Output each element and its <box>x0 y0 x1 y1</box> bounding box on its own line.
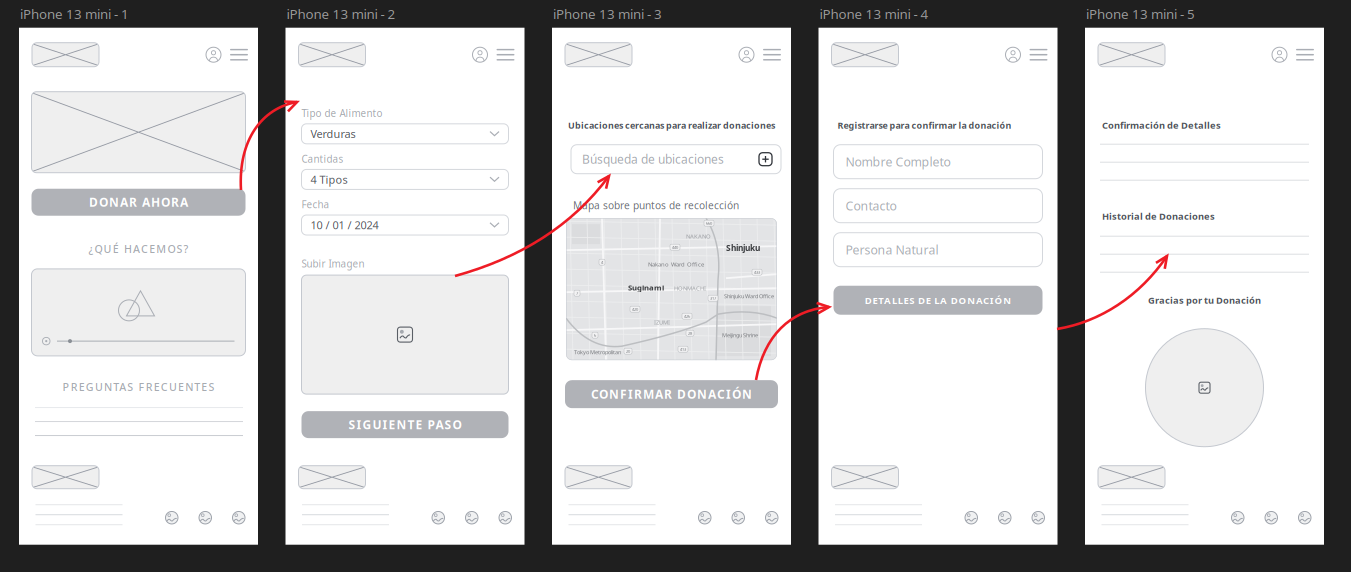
staticText: DONAR AHORA <box>89 194 188 210</box>
staticText: Cantidas <box>301 152 343 165</box>
staticText: Mapa sobre puntos de recolección <box>573 199 739 212</box>
button[interactable]: Perfil <box>472 47 487 62</box>
button[interactable]: CONFIRMAR DONACIÓN <box>565 380 778 408</box>
staticText: Verduras <box>310 126 355 141</box>
button[interactable]: Inicio <box>1098 43 1165 67</box>
staticText: 440 <box>672 244 678 250</box>
staticText: Registrarse para confirmar la donación <box>837 119 1011 131</box>
button[interactable]: 10 / 01 / 2024 <box>301 215 508 235</box>
staticText: 426 <box>684 313 690 319</box>
staticText: Tokyo Metropolitan <box>574 348 621 356</box>
button[interactable]: Perfil <box>1272 47 1287 62</box>
button[interactable]: Facebook <box>1231 511 1244 524</box>
button[interactable]: Twitter <box>1032 511 1044 524</box>
staticText: 28 <box>688 330 692 336</box>
staticText: 7 <box>576 290 578 296</box>
staticText: iPhone 13 mini - 1 <box>20 5 129 23</box>
staticText: Historial de Donaciones <box>1102 210 1215 222</box>
staticText: Shinjuku <box>726 242 760 253</box>
button[interactable]: Twitter <box>499 511 511 524</box>
button[interactable]: Twitter <box>765 511 778 524</box>
button[interactable]: SIGUIENTE PASO <box>301 411 508 438</box>
staticText: CONFIRMAR DONACIÓN <box>591 386 752 402</box>
staticText: 413 <box>680 346 686 352</box>
staticText: Persona Natural <box>845 242 938 258</box>
staticText: 10 / 01 / 2024 <box>310 218 378 232</box>
staticText: DETALLES DE LA DONACIÓN <box>865 294 1011 306</box>
button[interactable]: Inicio <box>831 43 898 67</box>
staticText: 20 <box>626 348 630 354</box>
button[interactable]: Inicio <box>298 43 365 67</box>
staticText: 4 <box>601 259 603 265</box>
button[interactable]: Nombre Completo <box>833 145 1042 179</box>
button[interactable]: Contacto <box>833 189 1042 223</box>
button[interactable]: Facebook <box>698 511 711 524</box>
staticText: HONMACHI <box>674 284 706 292</box>
button[interactable]: Perfil <box>1005 47 1020 62</box>
button[interactable]: DONAR AHORA <box>31 189 245 216</box>
button[interactable]: Instagram <box>998 511 1011 524</box>
button[interactable]: Perfil <box>206 47 221 62</box>
staticText: iPhone 13 mini - 5 <box>1086 5 1195 23</box>
button[interactable]: Menú <box>763 49 781 61</box>
staticText: Confirmación de Detalles <box>1102 119 1221 131</box>
staticText: Subir Imagen <box>301 257 364 270</box>
staticText: 6 <box>594 332 596 338</box>
button[interactable]: Twitter <box>1298 511 1311 524</box>
staticText: PREGUNTAS FRECUENTES <box>63 380 214 394</box>
staticText: 4 Tipos <box>310 172 347 187</box>
staticText: 317 <box>710 295 716 301</box>
staticText: Tipo de Alimento <box>301 107 382 120</box>
button[interactable]: Instagram <box>732 511 744 524</box>
button[interactable]: Perfil <box>739 47 754 62</box>
staticText: Shinjuku Ward Office <box>724 292 774 300</box>
button[interactable]: Persona Natural <box>833 233 1042 267</box>
staticText: 433 <box>754 269 760 275</box>
button[interactable]: Twitter <box>232 511 245 524</box>
staticText: Búsqueda de ubicaciones <box>582 151 724 167</box>
staticText: IZUMI <box>654 318 670 326</box>
staticText: iPhone 13 mini - 2 <box>286 5 395 23</box>
button[interactable]: Instagram <box>1265 511 1277 524</box>
button[interactable]: Verduras <box>301 124 508 144</box>
staticText: iPhone 13 mini - 3 <box>553 5 662 23</box>
button[interactable]: Instagram <box>199 511 211 524</box>
button[interactable]: Menú <box>230 49 248 61</box>
staticText: Gracias por tu Donación <box>1148 294 1261 306</box>
staticText: Contacto <box>845 198 896 214</box>
staticText: SIGUIENTE PASO <box>348 417 461 432</box>
button[interactable]: Menú <box>1029 49 1047 61</box>
button[interactable]: Inicio <box>565 43 632 67</box>
button[interactable]: Facebook <box>432 511 444 524</box>
button[interactable]: Instagram <box>465 511 478 524</box>
staticText: iPhone 13 mini - 4 <box>819 5 928 23</box>
staticText: Nakano Ward Office <box>648 260 704 268</box>
staticText: Ubicaciones cercanas para realizar donac… <box>568 119 775 131</box>
staticText: Suginami <box>628 282 664 293</box>
staticText: Meijingu Shrine <box>722 331 758 339</box>
button[interactable]: Menú <box>496 49 514 61</box>
staticText: Fecha <box>301 198 329 211</box>
staticText: 420 <box>632 306 638 312</box>
button[interactable]: DETALLES DE LA DONACIÓN <box>833 286 1042 315</box>
button[interactable]: Búsqueda de ubicaciones <box>571 145 781 174</box>
staticText: 660 <box>706 220 712 226</box>
button[interactable]: 4 Tipos <box>301 169 508 189</box>
button[interactable]: Inicio <box>32 43 99 67</box>
button[interactable]: Menú <box>1296 49 1314 61</box>
button[interactable]: Facebook <box>165 511 178 524</box>
staticText: ¿QUÉ HACEMOS? <box>88 242 189 256</box>
staticText: NAKANO <box>686 232 711 240</box>
staticText: Nombre Completo <box>845 154 950 170</box>
button[interactable]: Facebook <box>965 511 977 524</box>
